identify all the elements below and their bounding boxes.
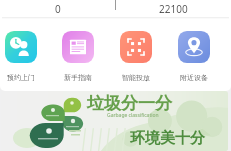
staticText: 新手指南 [64,73,92,82]
staticText: 0 [55,2,61,16]
staticText: Garbage classification [107,112,159,119]
button[interactable]: 附近设备 [165,31,223,82]
staticText: 附近设备 [180,73,208,82]
button[interactable]: 新手指南 [49,31,107,82]
button[interactable]: 预约上门 [0,31,49,82]
button[interactable]: 22100 [116,0,231,18]
button[interactable]: 智能投放 [107,31,165,82]
staticText: 环境美十分 [130,129,205,148]
button[interactable]: 垃圾分一分 [1,91,228,151]
staticText: 22100 [159,2,188,16]
staticText: 预约上门 [7,73,35,82]
button[interactable]: 0 [0,0,115,18]
staticText: 垃圾分一分 [87,93,172,114]
staticText: 智能投放 [122,73,150,82]
